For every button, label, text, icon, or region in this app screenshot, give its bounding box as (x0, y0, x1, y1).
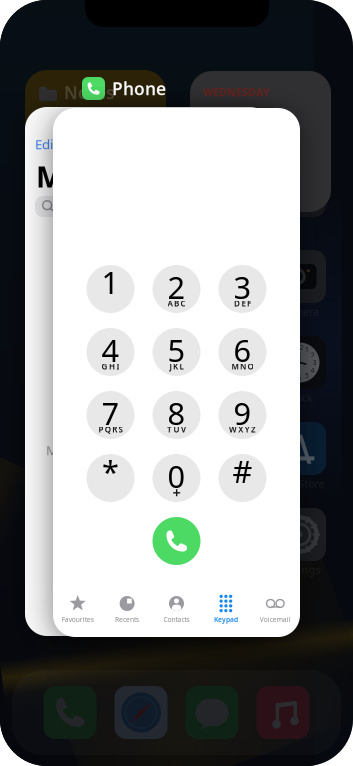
staticText: X (238, 424, 243, 435)
staticText: Camera (280, 304, 319, 319)
button[interactable]: 1 (86, 265, 134, 313)
button[interactable]: Settings (273, 508, 326, 574)
staticText: S (119, 424, 123, 435)
staticText: Favourites (62, 615, 94, 624)
staticText: G (102, 361, 108, 372)
staticText: Q (105, 424, 111, 435)
staticText: B (174, 298, 179, 309)
button[interactable]: 3 (218, 265, 266, 313)
button[interactable]: App (114, 686, 167, 739)
staticText: Settings (278, 562, 320, 577)
button[interactable]: 9 (218, 391, 266, 439)
button[interactable]: Camera (273, 250, 326, 316)
staticText: * (102, 451, 119, 491)
staticText: 5 (167, 330, 185, 370)
staticText: 12 (295, 343, 303, 352)
button[interactable]: 0 (152, 454, 200, 502)
staticText: A (168, 298, 173, 309)
button[interactable]: App (273, 164, 326, 230)
staticText: L (179, 361, 183, 372)
staticText: Phone (112, 77, 166, 100)
staticText: T (167, 424, 172, 435)
staticText: Keypad (214, 615, 238, 624)
staticText: 6 (233, 330, 251, 370)
staticText: Notes (64, 81, 115, 104)
staticText: 0 (167, 456, 185, 496)
button[interactable]: 6 (218, 328, 266, 376)
staticText: J (170, 361, 172, 372)
staticText: D (234, 298, 240, 309)
button[interactable]: 2 (152, 265, 200, 313)
staticText: Edit (35, 135, 58, 153)
button[interactable]: Recents (102, 594, 152, 624)
button[interactable]: Edit (25, 107, 272, 636)
staticText: N (240, 361, 246, 372)
staticText: 9 (233, 393, 251, 433)
button[interactable]: Keypad (201, 594, 251, 624)
button[interactable]: WEDNESDAY (190, 71, 331, 212)
button[interactable]: App Store (273, 422, 326, 488)
staticText: M (232, 361, 239, 372)
button[interactable]: 5 (152, 328, 200, 376)
staticText: 1 (101, 262, 119, 302)
staticText: Messages (46, 441, 107, 459)
staticText: Contacts (163, 615, 189, 624)
staticText: 3 (313, 358, 317, 367)
staticText: 8 (167, 393, 185, 433)
button[interactable]: 4 (86, 328, 134, 376)
staticText: Messages (36, 156, 182, 195)
button[interactable]: Call (152, 517, 200, 565)
staticText: U (173, 424, 179, 435)
staticText: 7 (101, 393, 119, 433)
staticText: Clock (286, 390, 313, 405)
staticText: V (181, 424, 186, 435)
staticText: E (241, 298, 245, 309)
button[interactable]: * (86, 454, 134, 502)
staticText: 6 (297, 373, 301, 382)
staticText: Z (251, 424, 256, 435)
staticText: 2 (167, 267, 185, 307)
staticText: 4 (311, 366, 315, 375)
staticText: K (173, 361, 178, 372)
staticText: Y (245, 424, 250, 435)
staticText: Recents (115, 615, 139, 624)
staticText: + (172, 483, 180, 502)
staticText: WEDNESDAY (203, 85, 270, 99)
staticText: H (109, 361, 115, 372)
staticText: O (247, 361, 253, 372)
button[interactable]: Clock (273, 336, 326, 402)
staticText: F (247, 298, 251, 309)
staticText: C (180, 298, 185, 309)
staticText: 2 (311, 350, 315, 359)
staticText: 1 (305, 345, 309, 354)
staticText: 5 (305, 371, 309, 380)
button[interactable]: App (43, 686, 96, 739)
button[interactable]: 8 (152, 391, 200, 439)
staticText: I (116, 361, 119, 372)
button[interactable]: Voicemail (251, 594, 300, 624)
staticText: W (229, 424, 237, 435)
button[interactable]: App (185, 686, 238, 739)
button[interactable]: App (256, 686, 309, 739)
staticText: R (112, 424, 117, 435)
staticText: Voicemail (260, 615, 291, 624)
button[interactable]: Notes (25, 70, 166, 211)
button[interactable]: # (218, 454, 266, 502)
staticText: 3 (233, 267, 251, 307)
staticText: App Store (274, 476, 324, 491)
staticText: 18 (201, 100, 249, 157)
button[interactable]: Favourites (53, 594, 102, 624)
staticText: # (232, 451, 252, 491)
button[interactable]: 7 (86, 391, 134, 439)
button[interactable]: Contacts (152, 594, 201, 624)
staticText: P (98, 424, 103, 435)
staticText: 4 (101, 330, 119, 370)
